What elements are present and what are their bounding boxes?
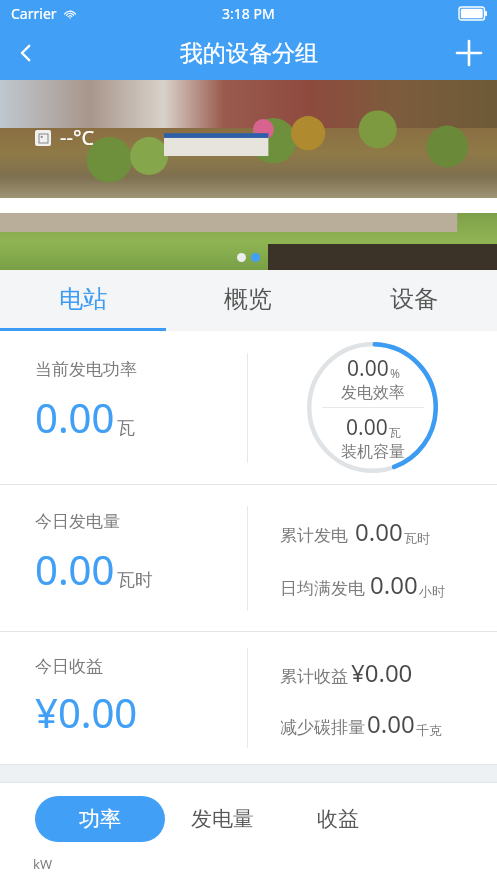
staticText: 0.00 (370, 568, 418, 601)
staticText: 功率 (79, 806, 121, 832)
staticText: 装机容量 (341, 442, 405, 462)
staticText: 今日收益 (35, 656, 103, 677)
staticText: 电站 (59, 284, 107, 314)
button[interactable]: 发电量 (165, 796, 280, 842)
staticText: ¥0.00 (351, 656, 413, 689)
staticText: 今日发电量 (35, 511, 120, 532)
staticText: Carrier (11, 4, 57, 23)
staticText: 概览 (224, 284, 272, 314)
staticText: 瓦 (117, 417, 135, 440)
staticText: % (390, 365, 400, 381)
button[interactable]: 概览 (165, 270, 331, 328)
staticText: 0.00 (367, 707, 415, 740)
staticText: 发电效率 (341, 383, 405, 403)
button[interactable]: Back (0, 27, 52, 79)
staticText: 3:18 PM (222, 4, 275, 23)
staticText: 累计收益 (280, 666, 348, 687)
staticText: 千克 (416, 722, 442, 738)
staticText: 0.00 (35, 542, 115, 596)
button[interactable]: 设备 (331, 270, 497, 328)
button[interactable]: 收益 (280, 796, 395, 842)
staticText: 日均满发电 (280, 578, 365, 599)
staticText: --°C (60, 124, 95, 151)
staticText: ¥0.00 (35, 685, 138, 739)
button[interactable]: 电站 (0, 270, 165, 328)
staticText: 0.00 (35, 390, 115, 444)
staticText: 减少碳排量 (280, 717, 365, 738)
staticText: 设备 (390, 284, 438, 314)
button[interactable]: Add (441, 26, 497, 80)
staticText: 收益 (317, 806, 359, 832)
staticText: 累计发电 (280, 525, 348, 546)
staticText: 瓦时 (404, 530, 430, 546)
staticText: 0.00 (346, 413, 388, 442)
staticText: 0.00 (347, 354, 389, 383)
staticText: 瓦 (389, 425, 401, 440)
staticText: 我的设备分组 (180, 39, 318, 68)
staticText: 瓦时 (117, 569, 153, 592)
staticText: 当前发电功率 (35, 359, 137, 380)
button[interactable]: 功率 (35, 796, 165, 842)
staticText: 发电量 (191, 806, 254, 832)
staticText: 小时 (419, 583, 445, 599)
staticText: kW (33, 855, 53, 873)
staticText: 0.00 (355, 515, 403, 548)
